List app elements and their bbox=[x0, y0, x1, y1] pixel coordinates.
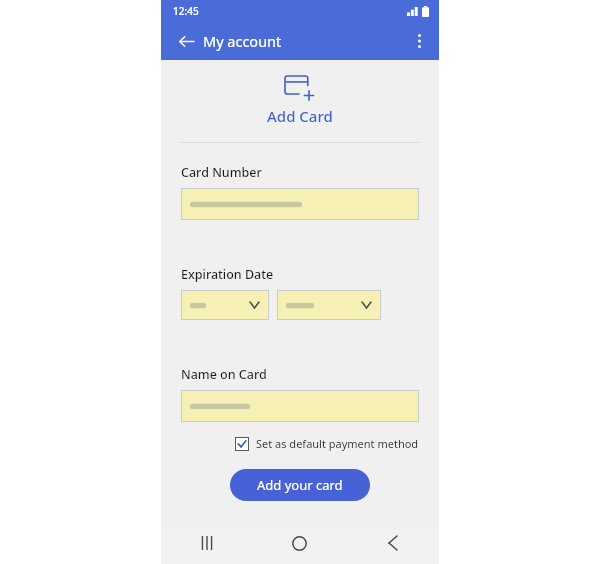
staticText: Add your card bbox=[257, 476, 343, 494]
button[interactable]: Add your card bbox=[230, 469, 370, 501]
staticText: Add Card bbox=[267, 106, 333, 126]
staticText: My account bbox=[203, 31, 282, 51]
button[interactable]: Set as default payment method bbox=[235, 436, 419, 451]
staticText: 12:45 bbox=[173, 4, 199, 18]
staticText: Expiration Date bbox=[181, 266, 274, 283]
button[interactable]: Home bbox=[253, 522, 346, 564]
staticText: Set as default payment method bbox=[256, 436, 419, 451]
button[interactable]: Back bbox=[346, 522, 439, 564]
button[interactable]: Navigate up bbox=[175, 30, 197, 52]
button[interactable]: Card number field bbox=[181, 188, 419, 220]
button[interactable]: Recent apps bbox=[161, 522, 253, 564]
staticText: Card Number bbox=[181, 164, 262, 181]
button[interactable]: Select value bbox=[277, 290, 381, 320]
button[interactable]: Add Card bbox=[161, 76, 439, 126]
button[interactable]: More options bbox=[408, 30, 430, 52]
staticText: Name on Card bbox=[181, 366, 267, 383]
button[interactable]: Select value bbox=[181, 290, 269, 320]
button[interactable]: Name on card field bbox=[181, 390, 419, 422]
